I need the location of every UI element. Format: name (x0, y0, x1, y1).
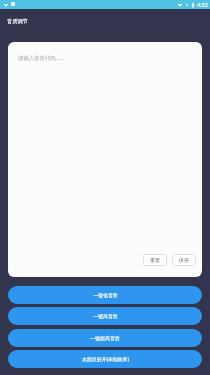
staticText: 一键低音质 (93, 292, 118, 298)
button[interactable]: 一键低音质 (8, 286, 202, 304)
staticText: 保存 (179, 257, 189, 263)
staticText: 请输入音质代码…… (18, 54, 65, 61)
staticText: 重置 (150, 257, 160, 263)
staticText: 音质调节 (7, 18, 28, 25)
button[interactable]: 水面反射开(未知效果) (8, 350, 202, 368)
staticText: 一键高音质 (93, 313, 118, 319)
button[interactable]: 保存 (172, 254, 196, 266)
button[interactable]: 一键超高音质 (8, 329, 202, 347)
staticText: 一键超高音质 (90, 335, 120, 341)
staticText: 4:32 (197, 1, 208, 8)
staticText: 水面反射开(未知效果) (82, 356, 129, 363)
button[interactable]: 重置 (143, 254, 167, 266)
button[interactable]: 一键高音质 (8, 307, 202, 325)
